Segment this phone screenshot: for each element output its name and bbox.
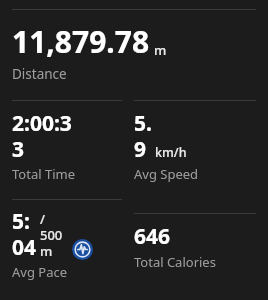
button[interactable]: 2:00:3 3 [12,109,75,183]
staticText: Avg Pace [12,263,68,281]
staticText: / 500 m [40,210,63,259]
staticText: 2:00:3 3 [12,109,72,163]
staticText: Total Time [12,165,75,183]
staticText: km/h [155,144,187,161]
staticText: Distance [12,65,67,83]
button[interactable]: 646 [134,222,216,271]
button[interactable]: 5. 9 [134,109,199,183]
staticText: m [154,41,167,59]
staticText: 5. 9 [134,109,152,163]
staticText: Avg Speed [134,165,199,183]
staticText: 11,879.78 [12,21,150,62]
button[interactable]: 11,879.78 [12,21,256,83]
button[interactable]: 5: 04 [12,207,93,281]
staticText: 646 [134,222,171,251]
staticText: 5: 04 [12,207,37,261]
staticText: Total Calories [134,253,216,271]
other: Heart rate [72,239,93,260]
